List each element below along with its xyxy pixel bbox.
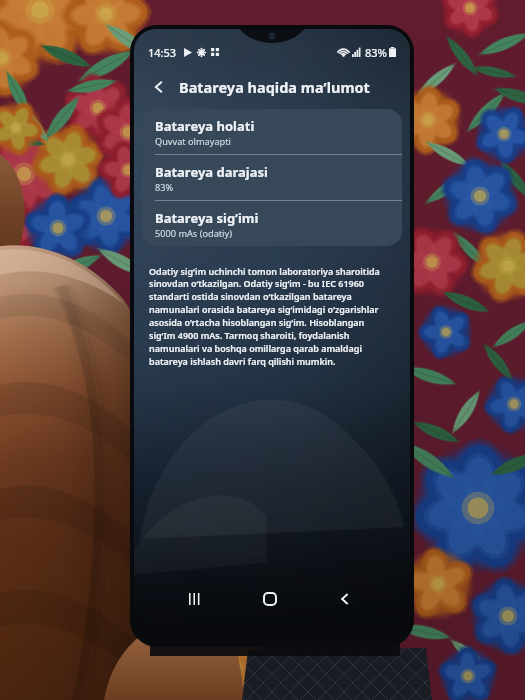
button[interactable]: Home bbox=[250, 582, 290, 616]
staticText: Batareya holati bbox=[155, 117, 255, 135]
staticText: 83% bbox=[155, 181, 174, 194]
staticText: Batareya haqida ma’lumot bbox=[179, 77, 370, 97]
staticText: 83% bbox=[365, 45, 387, 60]
button[interactable]: Back bbox=[325, 582, 365, 616]
staticText: Batareya sig’imi bbox=[155, 209, 259, 227]
button[interactable]: Back bbox=[148, 76, 170, 98]
button[interactable]: Batareya holati bbox=[142, 109, 402, 155]
button[interactable]: Batareya darajasi bbox=[142, 155, 402, 201]
staticText: 14:53 bbox=[148, 45, 177, 60]
staticText: 5000 mAs (odatiy) bbox=[155, 227, 232, 240]
button[interactable]: Batareya sig’imi bbox=[142, 201, 402, 246]
staticText: Odatiy sig‘im uchinchi tomon laboratoriy… bbox=[149, 265, 386, 368]
staticText: Quvvat olmayapti bbox=[155, 135, 231, 148]
staticText: Batareya darajasi bbox=[155, 163, 268, 181]
button[interactable]: Recents bbox=[175, 582, 215, 616]
